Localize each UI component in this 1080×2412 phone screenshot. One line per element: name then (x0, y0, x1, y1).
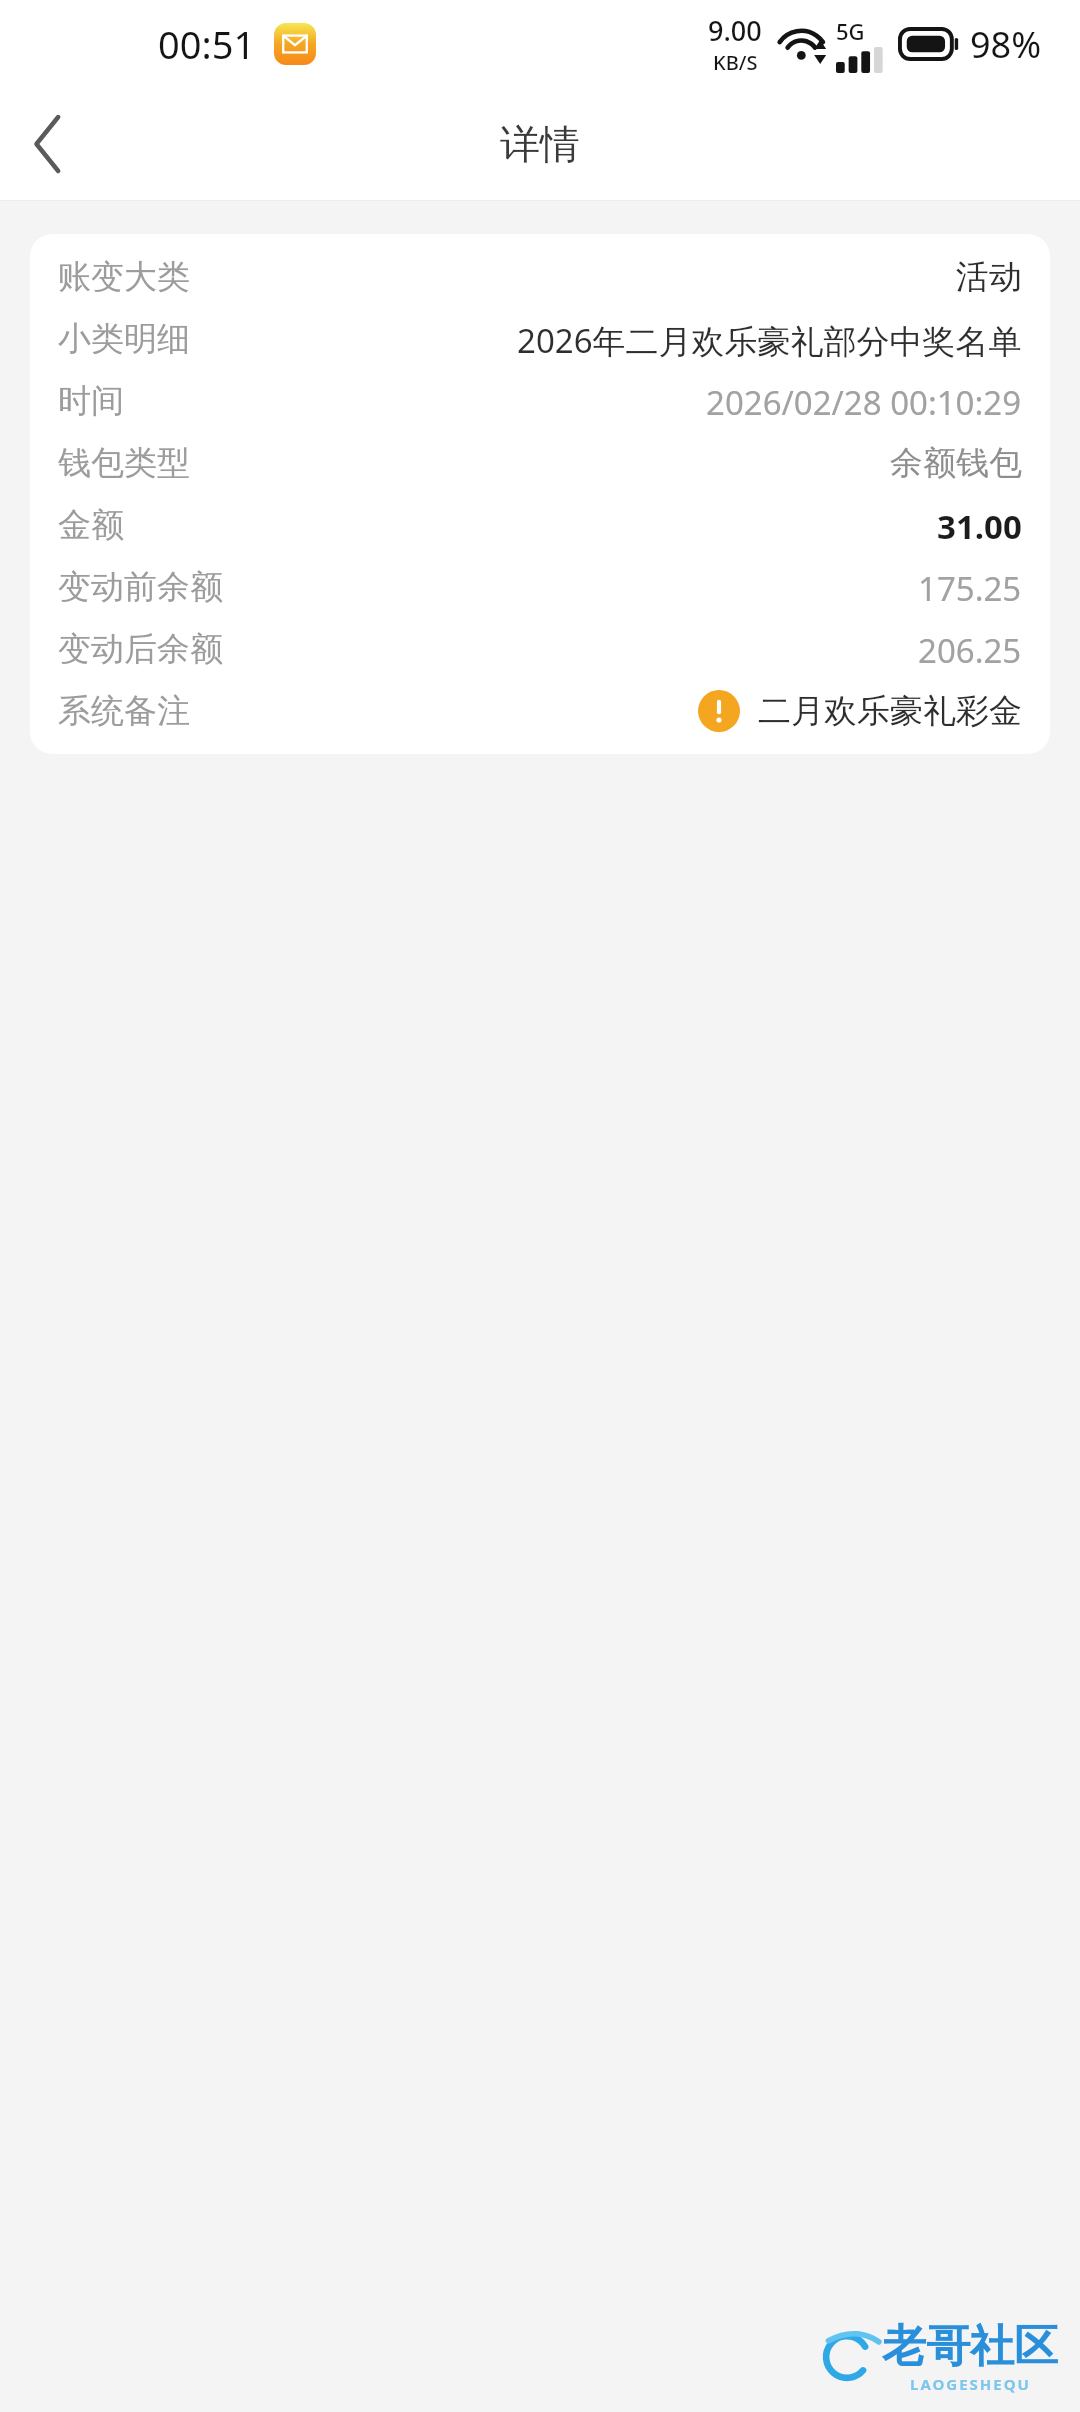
staticText: 变动前余额 (58, 566, 223, 608)
staticText: 31.00 (937, 504, 1022, 546)
staticText: 钱包类型 (58, 442, 190, 484)
staticText: 账变大类 (58, 256, 190, 298)
staticText: 余额钱包 (890, 442, 1022, 484)
staticText: 9.00 (708, 12, 762, 49)
staticText: 98% (970, 20, 1042, 69)
staticText: 2026/02/28 00:10:29 (706, 380, 1022, 422)
staticText: LAOGESHEQU (910, 2374, 1031, 2394)
staticText: 175.25 (918, 566, 1022, 608)
staticText: 系统备注 (58, 690, 190, 732)
staticText: 206.25 (918, 628, 1022, 670)
staticText: 5G (836, 16, 865, 46)
button[interactable]: Back (0, 88, 96, 200)
staticText: 老哥社区 (882, 2319, 1058, 2374)
staticText: 小类明细 (58, 318, 190, 360)
staticText: 二月欢乐豪礼彩金 (758, 690, 1022, 732)
staticText: 金额 (58, 504, 124, 546)
staticText: 00:51 (158, 18, 256, 70)
staticText: KB/S (713, 49, 758, 76)
staticText: 2026年二月欢乐豪礼部分中奖名单 (517, 318, 1022, 360)
staticText: 详情 (500, 119, 580, 169)
staticText: 活动 (956, 256, 1022, 298)
staticText: 变动后余额 (58, 628, 223, 670)
staticText: 时间 (58, 380, 124, 422)
